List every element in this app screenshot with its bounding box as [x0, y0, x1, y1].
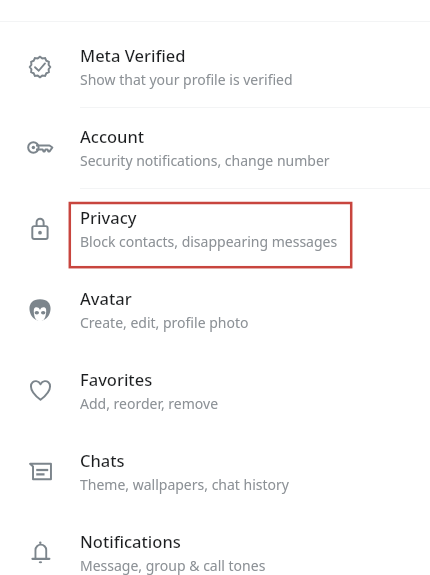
staticText: Notifications: [80, 530, 181, 552]
staticText: Block contacts, disappearing messages: [80, 232, 338, 251]
staticText: Add, reorder, remove: [80, 394, 219, 413]
button[interactable]: Chats: [0, 431, 430, 512]
staticText: Security notifications, change number: [80, 151, 330, 170]
staticText: Favorites: [80, 368, 153, 390]
button[interactable]: Privacy: [0, 188, 430, 269]
staticText: Chats: [80, 449, 125, 471]
staticText: Create, edit, profile photo: [80, 313, 249, 332]
staticText: Theme, wallpapers, chat history: [80, 475, 289, 494]
staticText: Account: [80, 125, 145, 147]
staticText: Show that your profile is verified: [80, 70, 293, 89]
button[interactable]: Favorites: [0, 350, 430, 431]
button[interactable]: Meta Verified: [0, 26, 430, 107]
button[interactable]: Notifications: [0, 512, 430, 575]
button[interactable]: Account: [0, 107, 430, 188]
staticText: Avatar: [80, 287, 132, 309]
button[interactable]: Avatar: [0, 269, 430, 350]
staticText: Message, group & call tones: [80, 556, 266, 575]
staticText: Meta Verified: [80, 44, 186, 66]
staticText: Privacy: [80, 206, 137, 228]
